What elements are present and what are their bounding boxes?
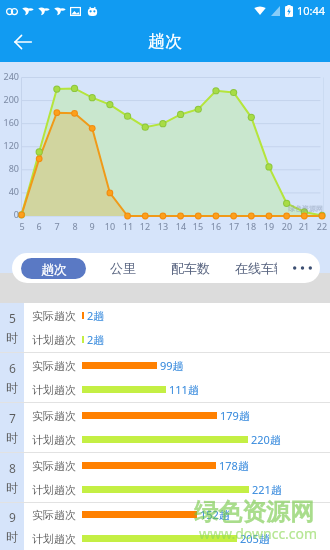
staticText: 205趟 xyxy=(240,531,270,546)
staticText: 11 xyxy=(118,220,138,232)
staticText: 公里 xyxy=(110,260,136,276)
staticText: 152趟 xyxy=(200,507,230,522)
staticText: 计划趟次 xyxy=(32,532,76,546)
staticText: 160 xyxy=(0,116,19,128)
staticText: 时 xyxy=(6,529,18,544)
button[interactable]: 公里 xyxy=(110,253,136,283)
staticText: 19 xyxy=(259,220,279,232)
staticText: 17 xyxy=(224,220,244,232)
button[interactable]: 9 xyxy=(0,503,330,550)
staticText: 0 xyxy=(0,208,19,220)
staticText: 18 xyxy=(241,220,261,232)
button[interactable]: Back xyxy=(5,24,41,60)
staticText: 21 xyxy=(294,220,314,232)
staticText: 在线车辆 xyxy=(235,260,277,276)
button[interactable]: 配车数 xyxy=(171,253,210,283)
staticText: 220趟 xyxy=(251,432,281,447)
staticText: 20 xyxy=(277,220,297,232)
staticText: 2趟 xyxy=(87,308,105,323)
staticText: 绿色资源网 xyxy=(288,204,323,213)
staticText: 221趟 xyxy=(252,482,282,497)
staticText: 179趟 xyxy=(220,408,250,423)
staticText: 时 xyxy=(6,330,18,345)
staticText: 5 xyxy=(12,220,32,232)
staticText: 240 xyxy=(0,70,19,82)
button[interactable]: 趟次 xyxy=(21,258,86,279)
staticText: 14 xyxy=(171,220,191,232)
staticText: 16 xyxy=(206,220,226,232)
staticText: 9 xyxy=(9,509,16,525)
staticText: 时 xyxy=(6,430,18,445)
staticText: 配车数 xyxy=(171,260,210,276)
button[interactable]: 7 xyxy=(0,403,330,452)
staticText: 8 xyxy=(9,460,16,476)
button[interactable]: 6 xyxy=(0,353,330,402)
staticText: 趟次 xyxy=(148,31,182,52)
staticText: 计划趟次 xyxy=(32,483,76,497)
staticText: 99趟 xyxy=(160,358,184,373)
staticText: 实际趟次 xyxy=(32,409,76,423)
staticText: 22 xyxy=(312,220,330,232)
staticText: 8 xyxy=(65,220,85,232)
staticText: 12 xyxy=(135,220,155,232)
staticText: 13 xyxy=(153,220,173,232)
staticText: 实际趟次 xyxy=(32,459,76,473)
staticText: 7 xyxy=(47,220,67,232)
staticText: 计划趟次 xyxy=(32,383,76,397)
staticText: 实际趟次 xyxy=(32,359,76,373)
staticText: 实际趟次 xyxy=(32,309,76,323)
staticText: 绿色资源网 xyxy=(194,497,314,527)
staticText: 200 xyxy=(0,93,19,105)
staticText: 10 xyxy=(100,220,120,232)
staticText: 120 xyxy=(0,139,19,151)
staticText: 15 xyxy=(188,220,208,232)
staticText: 5 xyxy=(9,310,16,326)
staticText: 9 xyxy=(82,220,102,232)
staticText: 6 xyxy=(9,360,16,376)
staticText: 80 xyxy=(0,162,19,174)
staticText: www.downcc.com xyxy=(199,524,318,543)
staticText: 时 xyxy=(6,480,18,495)
staticText: 10:44 xyxy=(297,3,326,18)
staticText: 计划趟次 xyxy=(32,433,76,447)
staticText: 7 xyxy=(9,410,16,426)
staticText: 时 xyxy=(6,380,18,395)
staticText: 40 xyxy=(0,185,19,197)
staticText: 6 xyxy=(29,220,49,232)
staticText: 计划趟次 xyxy=(32,333,76,347)
button[interactable]: 在线车辆 xyxy=(235,253,277,283)
staticText: 178趟 xyxy=(219,458,249,473)
button[interactable]: 5 xyxy=(0,303,330,352)
button[interactable]: 8 xyxy=(0,453,330,502)
button[interactable]: More tabs xyxy=(284,253,320,283)
staticText: 趟次 xyxy=(41,261,67,277)
staticText: 111趟 xyxy=(169,382,199,397)
staticText: 2趟 xyxy=(87,332,105,347)
staticText: 实际趟次 xyxy=(32,508,76,522)
